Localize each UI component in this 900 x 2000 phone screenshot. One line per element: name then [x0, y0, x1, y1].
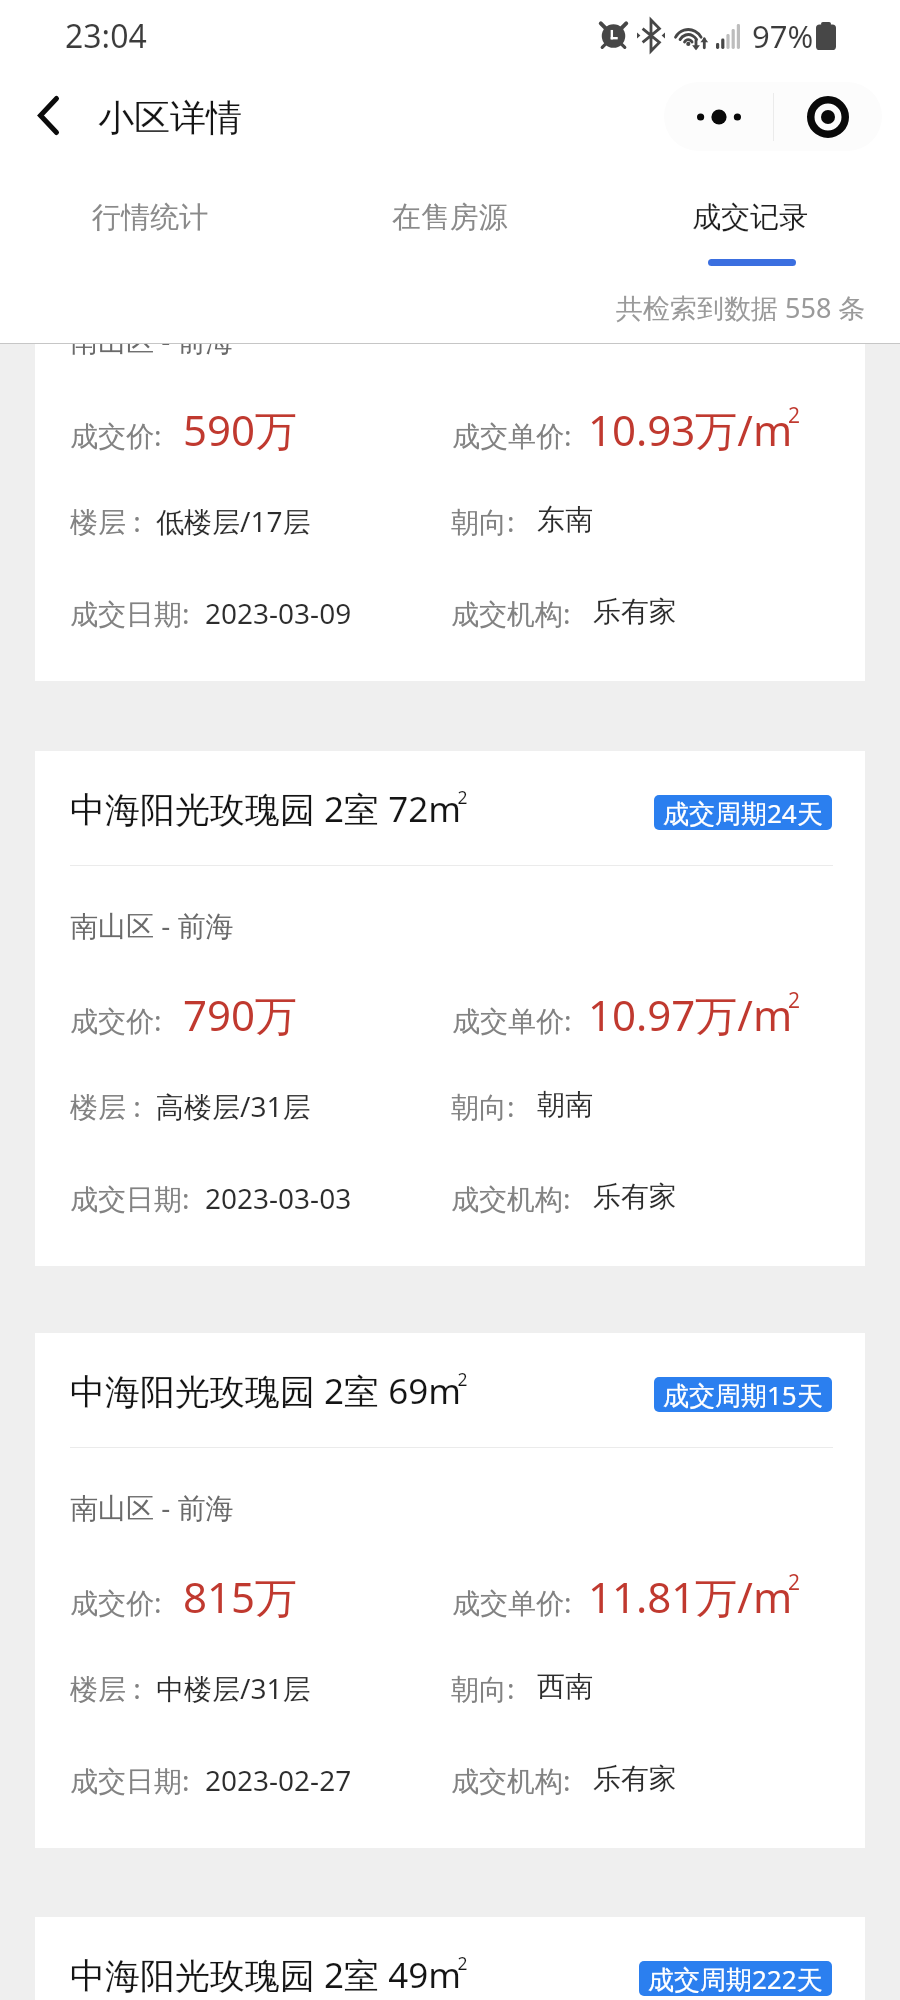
button[interactable]: 中海阳光玫瑰园 2室 69m2: [35, 1333, 865, 1848]
staticText: 楼层 :: [70, 1669, 156, 1707]
button[interactable]: 关闭: [774, 82, 882, 151]
staticText: 朝向:: [451, 502, 537, 540]
button[interactable]: 中海阳光玫瑰园 2室 72m2: [35, 751, 865, 1266]
button[interactable]: 成交记录: [600, 172, 900, 268]
staticText: 高楼层/31层: [156, 1087, 311, 1125]
staticText: 97%: [752, 15, 814, 57]
staticText: 10.93万/m2: [588, 401, 801, 458]
button[interactable]: 更多: [664, 82, 773, 151]
staticText: 成交价:: [70, 1583, 162, 1621]
staticText: 成交机构:: [451, 1179, 593, 1217]
staticText: 2023-03-09: [205, 594, 352, 632]
staticText: 成交价:: [70, 1001, 162, 1039]
staticText: 东南: [537, 502, 593, 537]
staticText: 2023-02-27: [205, 1761, 352, 1799]
staticText: 中海阳光玫瑰园 2室 49m2: [70, 1951, 468, 1999]
staticText: 成交单价:: [452, 1583, 572, 1621]
staticText: 楼层 :: [70, 502, 156, 540]
staticText: 成交周期24天: [663, 795, 823, 830]
staticText: 10.97万/m2: [588, 986, 801, 1043]
staticText: 成交单价:: [452, 1001, 572, 1039]
staticText: 790万: [183, 986, 298, 1043]
staticText: 成交日期:: [70, 1761, 205, 1799]
staticText: 成交日期:: [70, 1179, 205, 1217]
staticText: 朝向:: [451, 1669, 537, 1707]
staticText: 在售房源: [392, 199, 508, 236]
staticText: 成交周期222天: [648, 1961, 823, 1996]
staticText: 23:04: [65, 14, 147, 58]
staticText: 乐有家: [593, 1761, 677, 1796]
staticText: 行情统计: [92, 199, 208, 236]
button[interactable]: 行情统计: [0, 172, 300, 268]
staticText: 南山区 - 前海: [70, 344, 234, 359]
staticText: 中楼层/31层: [156, 1669, 311, 1707]
button[interactable]: 返回: [10, 77, 86, 153]
staticText: 乐有家: [593, 1179, 677, 1214]
staticText: 815万: [183, 1568, 298, 1625]
staticText: 590万: [183, 401, 298, 458]
staticText: 乐有家: [593, 594, 677, 629]
button[interactable]: 中海阳光玫瑰园 2室 49m2: [35, 1917, 865, 2000]
staticText: 成交价:: [70, 416, 162, 454]
staticText: 低楼层/17层: [156, 502, 311, 540]
staticText: 中海阳光玫瑰园 2室 69m2: [70, 1367, 468, 1415]
staticText: 南山区 - 前海: [70, 1488, 234, 1526]
staticText: 南山区 - 前海: [70, 906, 234, 944]
staticText: 中海阳光玫瑰园 2室 72m2: [70, 785, 468, 833]
staticText: 成交周期15天: [663, 1377, 823, 1412]
staticText: 成交机构:: [451, 1761, 593, 1799]
staticText: 小区详情: [98, 95, 242, 140]
staticText: 成交机构:: [451, 594, 593, 632]
button[interactable]: 中海阳光玫瑰园 2室 73m2: [35, 344, 865, 681]
staticText: 11.81万/m2: [588, 1568, 801, 1625]
staticText: 成交日期:: [70, 594, 205, 632]
button[interactable]: 在售房源: [300, 172, 600, 268]
staticText: 西南: [537, 1669, 593, 1704]
staticText: 成交记录: [692, 199, 808, 236]
staticText: 楼层 :: [70, 1087, 156, 1125]
staticText: 成交单价:: [452, 416, 572, 454]
staticText: 2023-03-03: [205, 1179, 352, 1217]
staticText: 朝向:: [451, 1087, 537, 1125]
staticText: 朝南: [537, 1087, 593, 1122]
staticText: 共检索到数据 558 条: [616, 289, 866, 326]
